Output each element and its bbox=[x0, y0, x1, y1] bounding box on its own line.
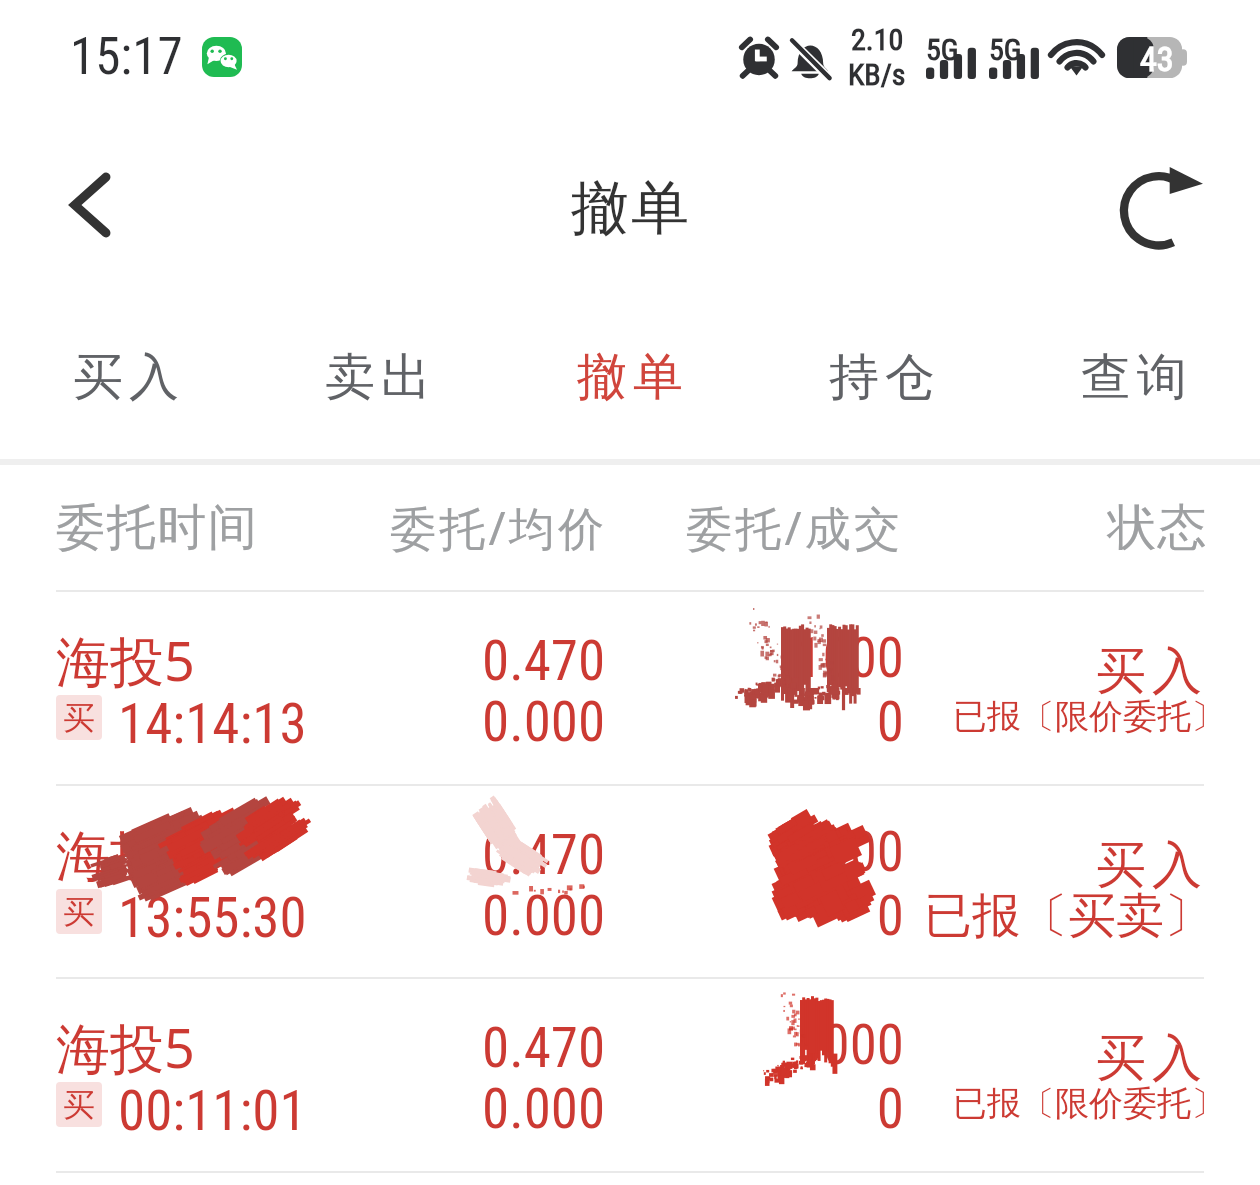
button[interactable]: 海投5 bbox=[0, 978, 1260, 1171]
button[interactable]: 查询 bbox=[1008, 296, 1260, 459]
staticText: 海投5 bbox=[56, 623, 195, 697]
staticText: 5G bbox=[926, 32, 959, 67]
staticText: 43 bbox=[1140, 39, 1174, 79]
staticText: 1000 bbox=[620, 820, 904, 884]
staticText: 买入 bbox=[70, 346, 182, 409]
staticText: 0.000 bbox=[482, 884, 606, 948]
staticText: 持仓 bbox=[826, 346, 938, 409]
staticText: 00:11:01 bbox=[118, 1079, 307, 1143]
staticText: 委托/成交 bbox=[686, 496, 904, 559]
staticText: 委托时间 bbox=[56, 497, 259, 559]
button[interactable]: 买入 bbox=[0, 296, 252, 459]
button[interactable]: Refresh bbox=[1113, 154, 1215, 256]
button[interactable]: 卖出 bbox=[252, 296, 504, 459]
staticText: 买 bbox=[63, 892, 95, 932]
staticText: 海投5 bbox=[56, 817, 195, 891]
staticText: 买入 bbox=[940, 834, 1208, 897]
staticText: 买入 bbox=[940, 1027, 1208, 1090]
staticText: 撤单 bbox=[570, 172, 690, 245]
staticText: 13:55:30 bbox=[118, 886, 307, 950]
staticText: 2.10 bbox=[851, 22, 904, 57]
staticText: 0.470 bbox=[482, 1016, 606, 1080]
staticText: 15:17 bbox=[70, 27, 183, 87]
staticText: KB/s bbox=[848, 57, 906, 92]
staticText: 海投5 bbox=[56, 1010, 195, 1084]
button[interactable]: 海投5 bbox=[0, 785, 1260, 978]
button[interactable]: Back bbox=[42, 157, 138, 253]
staticText: 0.470 bbox=[482, 629, 606, 693]
staticText: 1000 bbox=[620, 626, 904, 690]
staticText: 0 bbox=[620, 884, 904, 948]
staticText: 0 bbox=[620, 690, 904, 754]
staticText: 0 bbox=[620, 1077, 904, 1141]
staticText: 撤单 bbox=[574, 346, 686, 409]
staticText: 买 bbox=[63, 1085, 95, 1125]
button[interactable]: 撤单 bbox=[504, 296, 756, 459]
staticText: 5G bbox=[989, 32, 1022, 67]
button[interactable]: 海投5 bbox=[0, 591, 1260, 784]
staticText: 买入 bbox=[940, 640, 1208, 703]
staticText: 0.470 bbox=[482, 823, 606, 887]
staticText: 已报〔买卖〕 bbox=[880, 886, 1212, 946]
staticText: 1000 bbox=[620, 1013, 904, 1077]
staticText: 已报〔限价委托〕 bbox=[880, 1082, 1225, 1125]
staticText: 14:14:13 bbox=[118, 692, 307, 756]
staticText: 买 bbox=[63, 698, 95, 738]
staticText: 查询 bbox=[1078, 346, 1190, 409]
staticText: 已报〔限价委托〕 bbox=[880, 695, 1225, 738]
staticText: 0.000 bbox=[482, 1077, 606, 1141]
staticText: 卖出 bbox=[322, 346, 434, 409]
staticText: 委托/均价 bbox=[390, 496, 608, 559]
button[interactable]: 持仓 bbox=[756, 296, 1008, 459]
staticText: 状态 bbox=[1107, 497, 1207, 559]
staticText: 0.000 bbox=[482, 690, 606, 754]
